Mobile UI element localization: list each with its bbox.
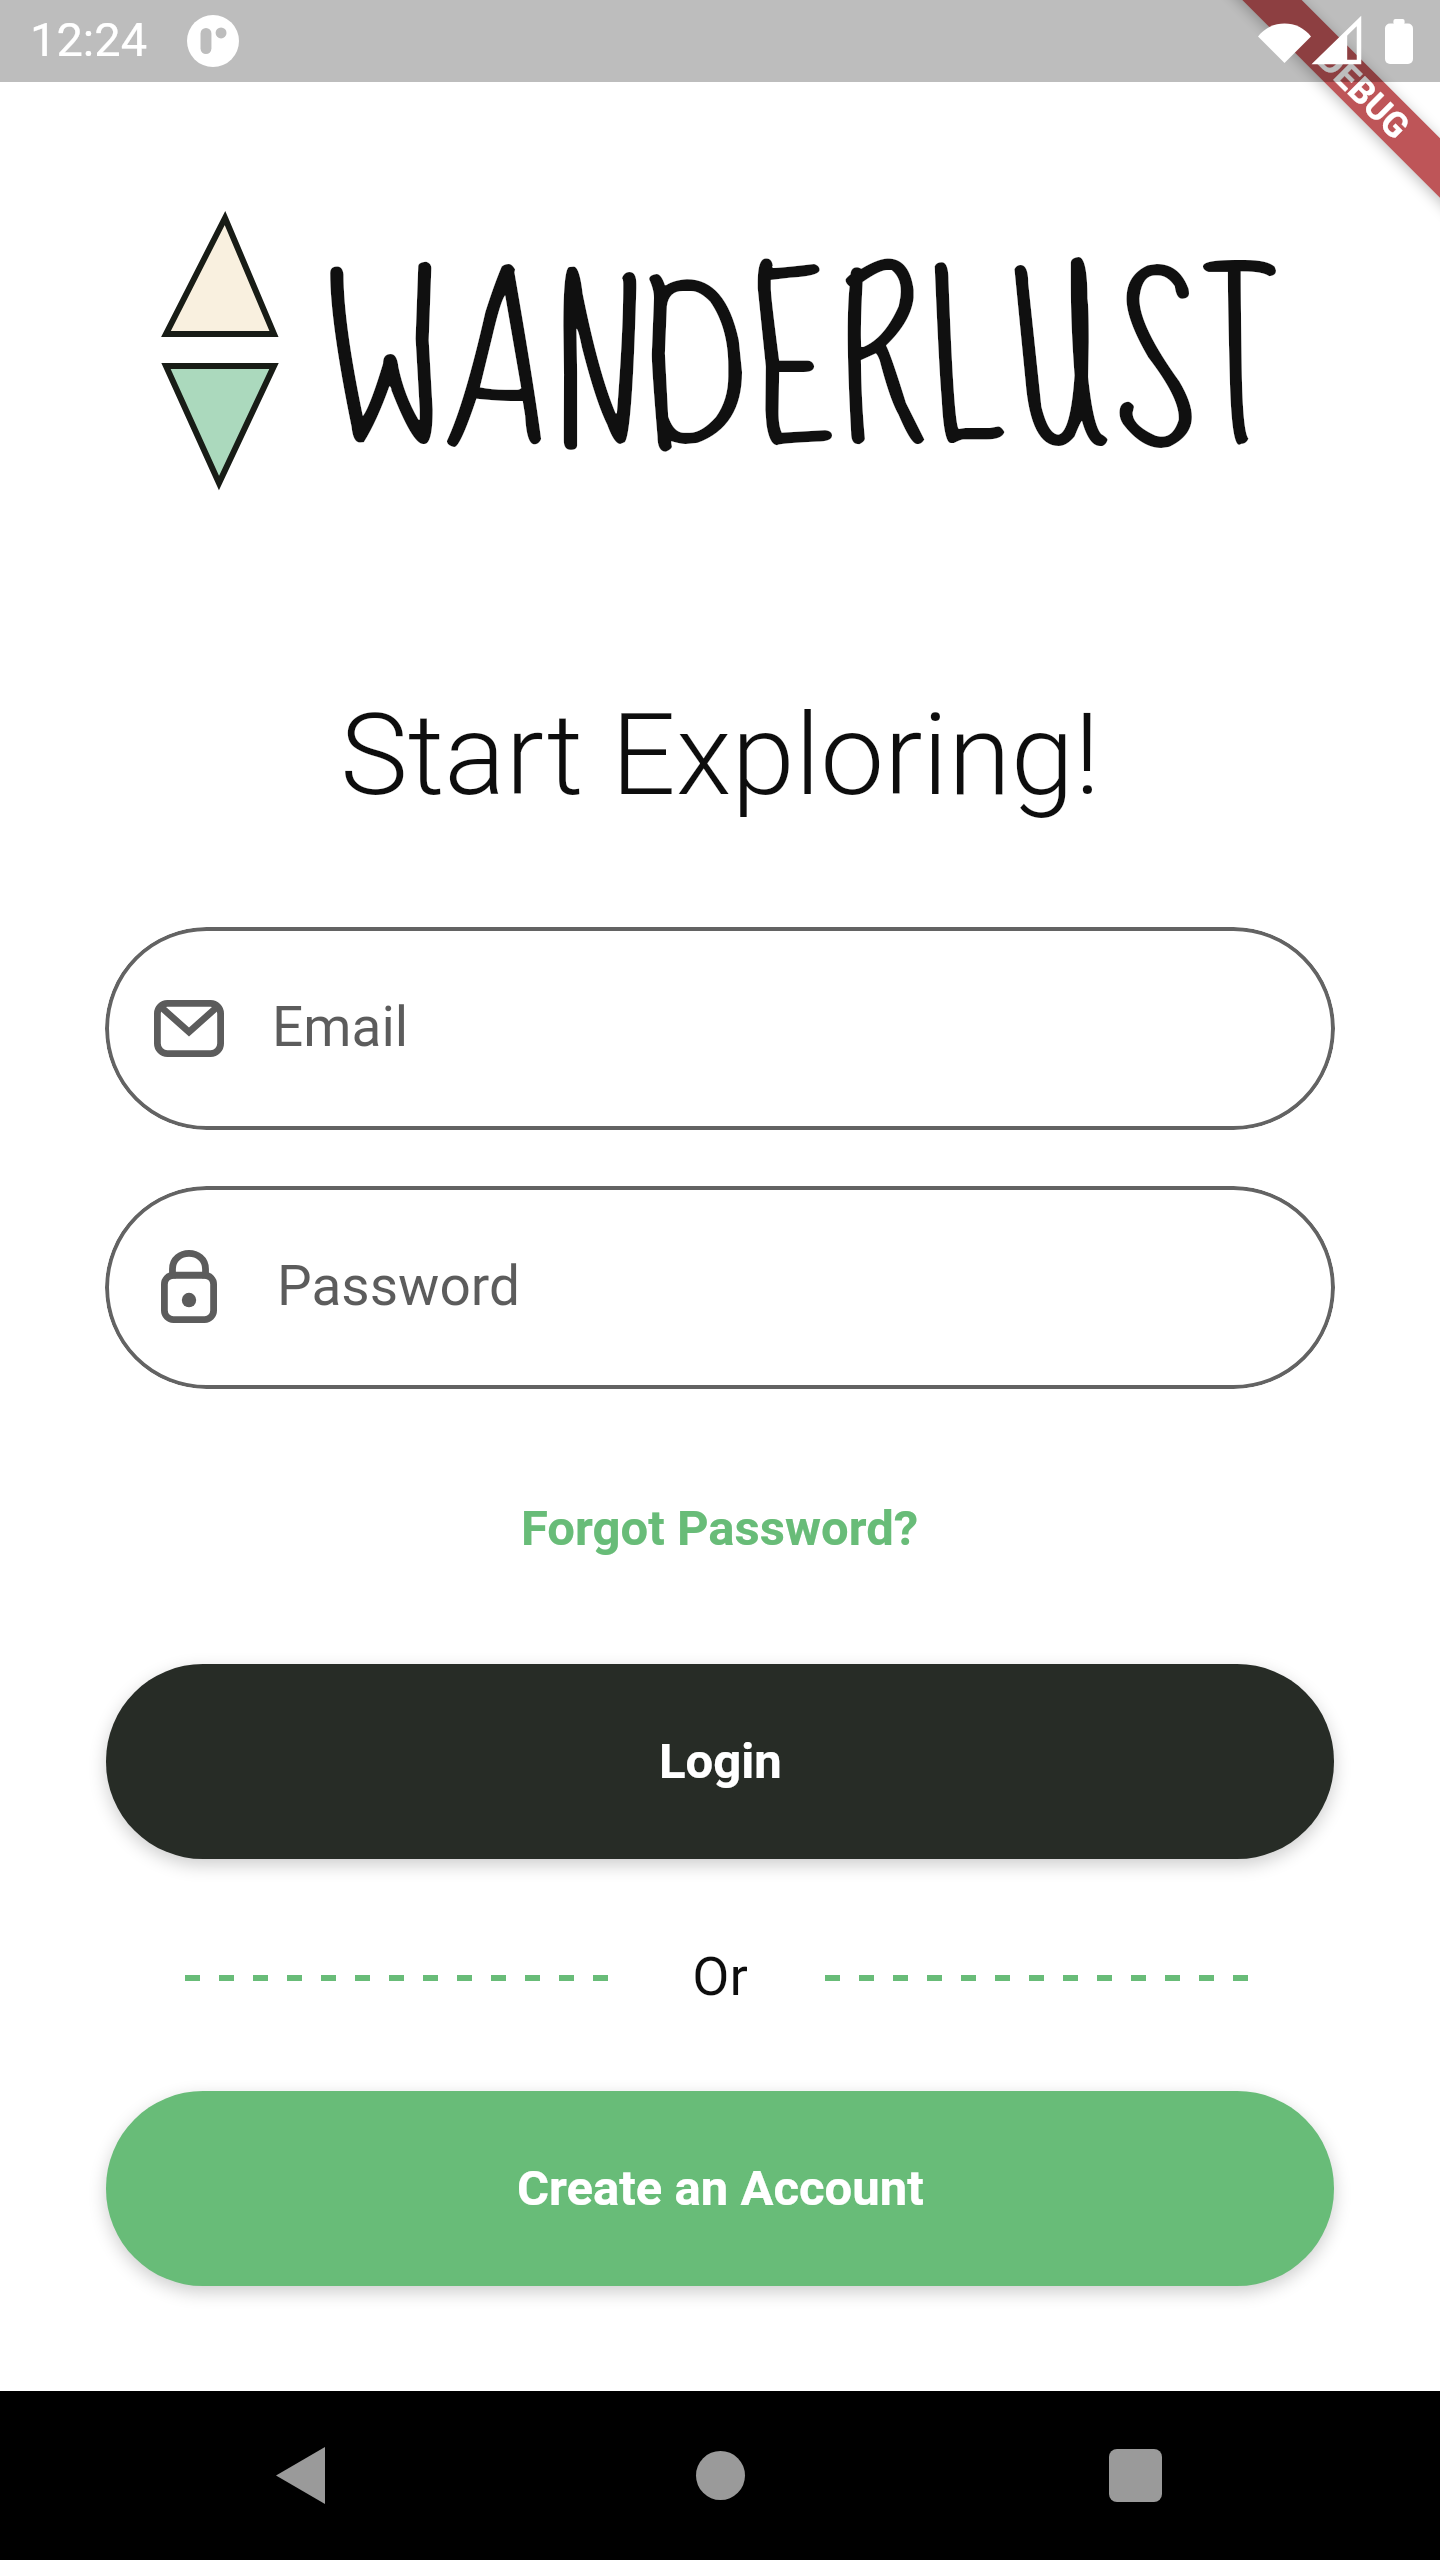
staticText: 12:24 [30, 12, 148, 67]
button[interactable]: Back [240, 2391, 360, 2560]
button[interactable]: Email [105, 927, 1335, 1130]
button[interactable]: Create an Account [106, 2091, 1334, 2286]
staticText: Or [0, 1945, 1440, 2008]
staticText: WANDERLUST [321, 182, 1282, 561]
staticText: DEBUG [1309, 39, 1417, 148]
button[interactable]: Password [105, 1186, 1335, 1389]
staticText: Create an Account [517, 2160, 924, 2217]
button[interactable]: Home [660, 2391, 780, 2560]
staticText: Login [659, 1733, 782, 1790]
staticText: Email [272, 995, 409, 1059]
button[interactable]: Recent apps [1075, 2391, 1195, 2560]
staticText: Password [277, 1254, 520, 1318]
button[interactable]: Login [106, 1664, 1334, 1859]
staticText: Start Exploring! [0, 688, 1440, 822]
staticText: Forgot Password? [521, 1500, 919, 1557]
button[interactable]: Forgot Password? [460, 1482, 980, 1574]
